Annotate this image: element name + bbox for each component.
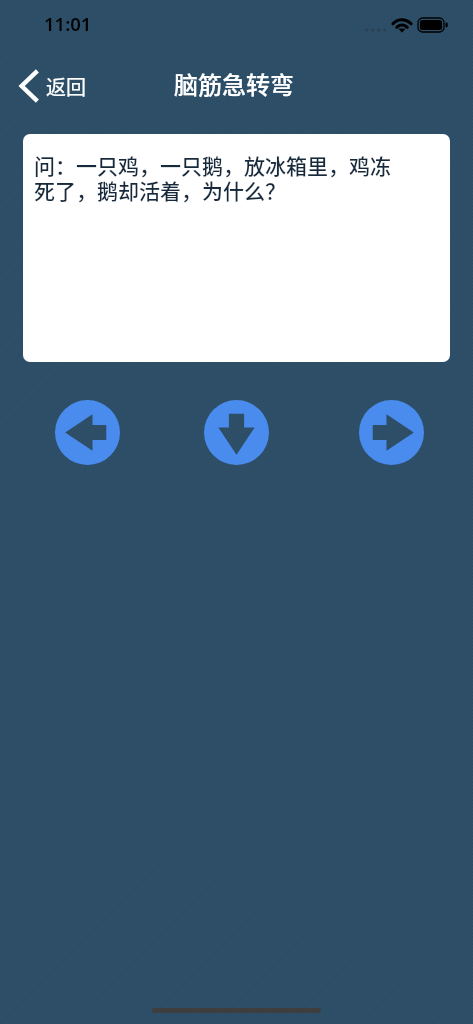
staticText: 返回 — [46, 72, 86, 101]
button[interactable]: Next question — [359, 400, 424, 465]
button[interactable]: Previous question — [55, 400, 120, 465]
staticText: 问：一只鸡，一只鹅，放冰箱里，鸡冻 死了，鹅却活着，为什么？ — [34, 154, 391, 204]
button[interactable]: 返回 — [6, 62, 100, 110]
staticText: 脑筋急转弯 — [174, 66, 294, 101]
button[interactable]: Show answer — [204, 400, 269, 465]
staticText: 11:01 — [44, 11, 92, 36]
